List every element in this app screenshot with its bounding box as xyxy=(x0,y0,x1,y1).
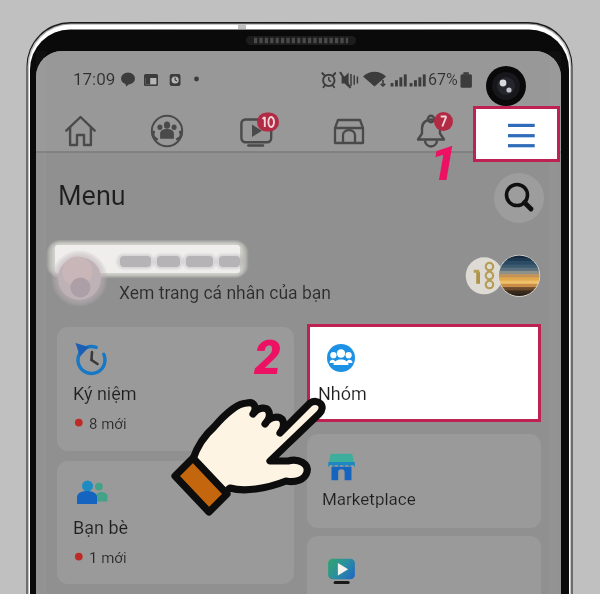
button[interactable]: Marketplace xyxy=(307,434,541,528)
staticText: Ký niệm xyxy=(73,383,137,404)
staticText: Nhóm xyxy=(318,383,367,404)
button[interactable]: Marketplace xyxy=(323,101,375,153)
button[interactable]: Video xyxy=(307,536,541,594)
button[interactable]: Bạn bè xyxy=(57,461,294,584)
button[interactable]: Ký niệm xyxy=(57,327,294,451)
button[interactable]: Home xyxy=(55,101,107,153)
button[interactable]: Search xyxy=(494,173,544,223)
staticText: 1 xyxy=(430,135,457,191)
button[interactable]: Notifications xyxy=(405,101,457,153)
staticText: 2 xyxy=(254,329,281,385)
button[interactable]: Nhóm xyxy=(310,327,538,419)
staticText: Menu xyxy=(58,180,126,212)
staticText: 67% xyxy=(428,70,458,89)
button[interactable]: Open menu xyxy=(476,109,557,159)
staticText: Xem trang cá nhân của bạn xyxy=(119,283,331,304)
button[interactable]: Xem trang cá nhân của bạn xyxy=(36,252,561,308)
staticText: 17:09 xyxy=(73,69,116,89)
button[interactable]: Video xyxy=(230,101,282,153)
staticText: 8 mới xyxy=(89,415,127,433)
staticText: Marketplace xyxy=(322,489,416,509)
staticText: 1 mới xyxy=(89,549,127,567)
staticText: Bạn bè xyxy=(73,517,129,538)
button[interactable]: Friends xyxy=(141,101,193,153)
